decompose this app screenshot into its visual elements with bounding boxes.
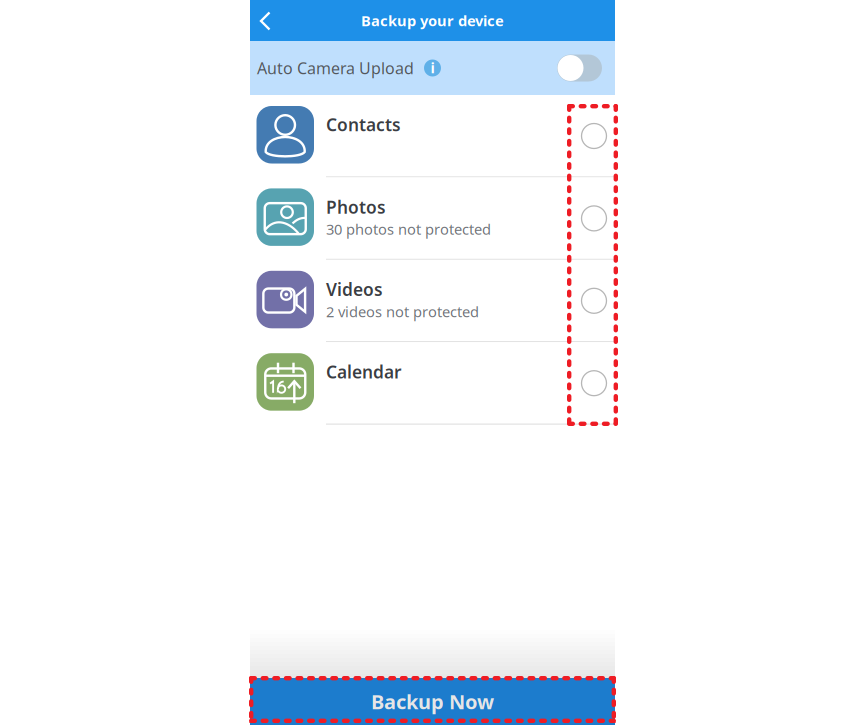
staticText: Videos [326, 278, 383, 301]
staticText: Calendar [326, 360, 402, 383]
button[interactable]: Backup Now [250, 678, 615, 725]
button[interactable]: Contacts [250, 95, 615, 177]
staticText: Backup your device [361, 11, 504, 30]
button[interactable]: Videos [250, 260, 615, 342]
button[interactable]: Back [250, 0, 284, 41]
staticText: Contacts [326, 113, 401, 136]
staticText: Photos [326, 195, 386, 218]
button[interactable]: Photos [250, 177, 615, 260]
staticText: 30 photos not protected [326, 219, 491, 239]
button[interactable]: Calendar [250, 342, 615, 425]
staticText: 2 videos not protected [326, 302, 479, 321]
staticText: Auto Camera Upload [257, 57, 414, 79]
staticText: Backup Now [371, 688, 494, 715]
staticText: i [430, 58, 434, 77]
button[interactable]: Auto Camera Upload toggle [557, 54, 602, 81]
